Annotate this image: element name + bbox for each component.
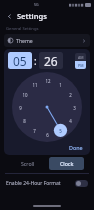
- staticText: 6: [46, 132, 49, 138]
- staticText: Done: [69, 144, 83, 151]
- staticText: Scroll: [21, 160, 35, 167]
- staticText: 05: [13, 53, 27, 69]
- staticText: 26: [44, 53, 58, 69]
- staticText: 2: [69, 92, 72, 98]
- button[interactable]: Back: [4, 11, 15, 22]
- staticText: 4: [69, 118, 72, 124]
- staticText: Clock: [60, 160, 74, 167]
- staticText: 8: [23, 118, 26, 124]
- button[interactable]: Clock: [49, 157, 84, 170]
- staticText: Theme: [16, 37, 33, 44]
- button[interactable]: Done: [66, 143, 86, 152]
- button[interactable]: Enable 24-Hour Format: [0, 178, 94, 189]
- staticText: 9: [19, 105, 22, 111]
- staticText: PM: [78, 63, 84, 68]
- button[interactable]: Theme: [4, 34, 90, 47]
- staticText: Settings: [17, 11, 47, 21]
- staticText: AM: [78, 55, 84, 60]
- staticText: 10: [22, 92, 28, 98]
- button[interactable]: 26: [39, 52, 63, 69]
- button[interactable]: 05: [8, 52, 32, 69]
- staticText: 3: [73, 105, 76, 111]
- staticText: 11: [32, 82, 38, 88]
- staticText: 12: [45, 78, 51, 84]
- button[interactable]: PM: [75, 61, 86, 69]
- button[interactable]: Clock dial: [12, 72, 82, 142]
- staticText: 5: [59, 128, 62, 134]
- button[interactable]: AM: [75, 53, 86, 61]
- button[interactable]: Scroll: [10, 157, 45, 170]
- staticText: General Settings: [6, 26, 39, 32]
- staticText: 1: [59, 82, 62, 88]
- staticText: 5G: [34, 2, 39, 7]
- staticText: :: [34, 54, 37, 68]
- staticText: Enable 24-Hour Format: [6, 180, 61, 187]
- staticText: 7: [33, 128, 36, 134]
